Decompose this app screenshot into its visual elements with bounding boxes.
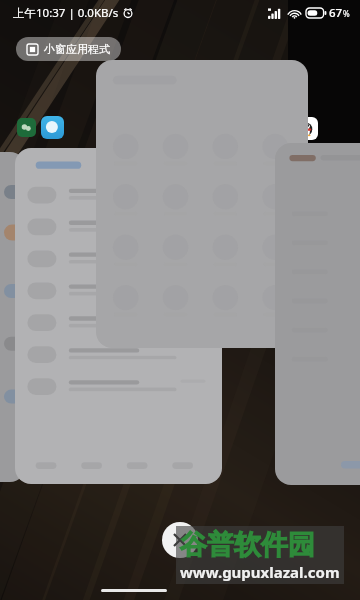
button[interactable]: QQ bbox=[295, 117, 318, 140]
button[interactable]: Recent app bbox=[15, 148, 222, 484]
button[interactable]: Recent app bbox=[275, 143, 360, 485]
button[interactable]: App shortcut bbox=[41, 116, 64, 139]
button[interactable]: 小窗应用程式 bbox=[16, 37, 121, 61]
button[interactable]: Recent app bbox=[0, 152, 26, 482]
staticText: www.gupuxlazal.com bbox=[180, 562, 340, 582]
staticText: 上午10:37 | 0.0KB/s bbox=[13, 5, 119, 21]
staticText: 67 bbox=[329, 5, 343, 21]
staticText: 谷普软件园 bbox=[180, 528, 315, 562]
button[interactable]: Clear all recent apps bbox=[162, 522, 198, 558]
staticText: % bbox=[343, 8, 350, 19]
staticText: 小窗应用程式 bbox=[44, 42, 110, 56]
button[interactable]: Recent app bbox=[96, 60, 308, 348]
button[interactable]: App shortcut bbox=[17, 118, 36, 137]
